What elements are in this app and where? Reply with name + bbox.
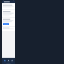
button[interactable] xyxy=(2,4,15,9)
button[interactable] xyxy=(2,10,15,17)
button[interactable] xyxy=(2,27,15,31)
button[interactable]: Search xyxy=(7,58,11,62)
button[interactable] xyxy=(2,18,15,26)
button[interactable]: More options xyxy=(12,0,15,3)
button[interactable]: Home xyxy=(2,58,7,62)
button[interactable]: Profile xyxy=(11,58,15,62)
button[interactable]: Menu xyxy=(2,0,5,3)
button[interactable] xyxy=(3,23,9,25)
